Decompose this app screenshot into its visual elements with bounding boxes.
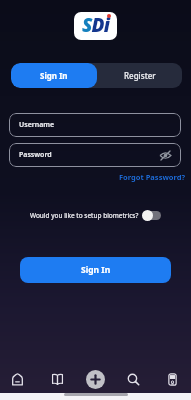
button[interactable] (161, 368, 183, 390)
staticText: Sign In (40, 70, 68, 81)
staticText: SDi (82, 12, 110, 38)
button[interactable]: Register (97, 63, 182, 88)
staticText: Forgot Password? (119, 172, 186, 182)
button[interactable]: Username (9, 113, 181, 137)
button[interactable] (84, 368, 106, 390)
button[interactable]: Sign In (11, 63, 97, 88)
staticText: Register (124, 70, 156, 81)
staticText: Would you like to setup biometrics? (30, 211, 139, 220)
button[interactable]: Would you like to setup biometrics? (30, 209, 162, 222)
staticText: Sign In (81, 264, 111, 276)
staticText: Password (19, 150, 52, 160)
button[interactable] (6, 368, 28, 390)
button[interactable]: Password (9, 143, 181, 167)
button[interactable]: Forgot Password? (119, 172, 186, 182)
button[interactable] (46, 368, 68, 390)
button[interactable] (122, 368, 144, 390)
button[interactable]: Sign In (20, 257, 171, 283)
staticText: Username (19, 120, 55, 130)
